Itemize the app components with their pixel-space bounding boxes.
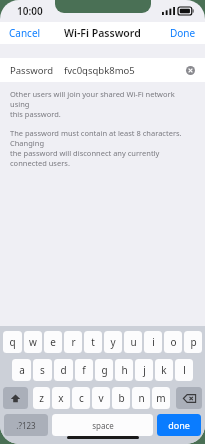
button[interactable]: s [33, 359, 52, 381]
button[interactable]: w [24, 331, 42, 353]
staticText: Done [170, 26, 196, 40]
staticText: Password [10, 64, 53, 77]
staticText: r [71, 335, 76, 349]
button[interactable]: a [12, 359, 31, 381]
staticText: i [152, 335, 155, 349]
staticText: h [121, 363, 128, 377]
staticText: p [190, 335, 197, 349]
button[interactable]: l [175, 359, 193, 381]
staticText: g [101, 363, 108, 377]
button[interactable]: f [75, 359, 93, 381]
staticText: l [183, 363, 186, 377]
button[interactable]: x [52, 387, 70, 409]
button[interactable]: done [157, 414, 201, 436]
staticText: y [110, 335, 116, 349]
button[interactable]: c [72, 387, 90, 409]
button[interactable]: m [152, 387, 170, 409]
button[interactable]: v [92, 387, 110, 409]
button[interactable]: t [84, 331, 102, 353]
staticText: k [161, 363, 167, 377]
button[interactable]: i [144, 331, 162, 353]
button[interactable]: y [104, 331, 122, 353]
button[interactable]: h [115, 359, 133, 381]
button[interactable]: r [64, 331, 82, 353]
staticText: q [9, 335, 16, 349]
staticText: t [91, 335, 95, 349]
button[interactable]: j [135, 359, 153, 381]
staticText: n [138, 391, 145, 405]
button[interactable]: k [155, 359, 173, 381]
button[interactable]: p [184, 331, 202, 353]
staticText: v [98, 391, 104, 405]
button[interactable]: o [164, 331, 182, 353]
staticText: c [79, 391, 84, 405]
button[interactable]: b [112, 387, 130, 409]
button[interactable]: Shift [3, 387, 28, 409]
button[interactable]: q [3, 331, 22, 353]
button[interactable]: n [132, 387, 150, 409]
staticText: Wi-Fi Password [64, 26, 141, 40]
staticText: d [60, 363, 67, 377]
button[interactable]: g [95, 359, 113, 381]
staticText: Other users will join your shared Wi-Fi … [10, 89, 195, 119]
button[interactable]: Password [0, 58, 205, 82]
staticText: f [82, 363, 86, 377]
staticText: done [168, 419, 190, 431]
staticText: z [39, 391, 44, 405]
button[interactable]: Clear text [184, 64, 197, 77]
staticText: u [130, 335, 137, 349]
staticText: a [19, 363, 25, 377]
button[interactable]: space [52, 414, 153, 436]
staticText: .?123 [16, 420, 36, 431]
button[interactable]: d [54, 359, 73, 381]
button[interactable]: Backspace [176, 387, 202, 409]
staticText: b [118, 391, 125, 405]
staticText: j [143, 363, 146, 377]
staticText: x [58, 391, 64, 405]
staticText: m [156, 391, 166, 405]
button[interactable]: z [33, 387, 50, 409]
staticText: 10:00 [17, 4, 43, 18]
staticText: The password must contain at least 8 cha… [10, 128, 195, 168]
staticText: space [92, 420, 114, 431]
staticText: fvc0qsqbk8mo5 [64, 64, 135, 77]
staticText: Cancel [9, 26, 41, 40]
button[interactable]: Done [161, 23, 205, 43]
staticText: o [170, 335, 177, 349]
button[interactable]: Cancel [0, 23, 50, 43]
staticText: w [29, 335, 37, 349]
staticText: e [50, 335, 56, 349]
button[interactable]: .?123 [4, 414, 48, 436]
staticText: s [40, 363, 45, 377]
button[interactable]: u [124, 331, 142, 353]
button[interactable]: e [44, 331, 62, 353]
